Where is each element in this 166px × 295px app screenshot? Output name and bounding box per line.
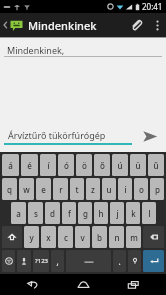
staticText: Mindenkinek <box>28 18 97 33</box>
staticText: k <box>131 208 136 219</box>
button[interactable]: Árvíztűrő tükörfúrógép <box>4 127 132 145</box>
button[interactable]: w <box>19 178 34 200</box>
button[interactable]: é <box>21 154 38 176</box>
button[interactable]: v <box>75 226 90 248</box>
staticText: g <box>83 208 88 219</box>
button[interactable]: y <box>24 226 39 248</box>
staticText: a <box>16 208 21 219</box>
button[interactable]: Back <box>16 274 50 295</box>
staticText: ?123 <box>35 257 48 265</box>
staticText: Árvíztűrő tükörfúrógép <box>8 129 106 141</box>
button[interactable]: í <box>40 154 56 176</box>
staticText: i <box>124 184 127 195</box>
button[interactable]: i <box>118 178 132 200</box>
staticText: o <box>139 184 144 195</box>
button[interactable]: k <box>126 202 140 224</box>
staticText: ú <box>117 160 123 171</box>
staticText: y <box>29 232 34 243</box>
staticText: q <box>7 184 12 195</box>
button[interactable]: n <box>109 226 124 248</box>
staticText: d <box>50 208 55 219</box>
button[interactable]: l <box>142 202 156 224</box>
button[interactable]: Send <box>136 124 164 148</box>
button[interactable]: h <box>94 202 108 224</box>
staticText: h <box>98 208 104 219</box>
button[interactable]: Enter <box>143 250 164 272</box>
staticText: j <box>116 208 119 219</box>
button[interactable]: More options <box>148 13 166 37</box>
button[interactable]: Home <box>66 274 100 295</box>
staticText: t <box>75 184 79 195</box>
button[interactable]: a <box>11 202 26 224</box>
staticText: n <box>114 232 120 243</box>
staticText: w <box>23 184 30 195</box>
button[interactable]: t <box>70 178 84 200</box>
button[interactable]: Shift <box>2 226 22 248</box>
button[interactable]: m <box>126 226 141 248</box>
staticText: í <box>47 160 50 171</box>
button[interactable]: ó <box>58 154 74 176</box>
staticText: , <box>56 256 59 267</box>
staticText: u <box>106 184 112 195</box>
button[interactable]: ú <box>112 154 128 176</box>
staticText: x <box>46 232 51 243</box>
button[interactable]: . <box>113 250 126 272</box>
button[interactable]: p <box>150 178 164 200</box>
button[interactable]: Recent apps <box>116 274 150 295</box>
button[interactable]: ?123 <box>33 250 49 272</box>
button[interactable]: f <box>62 202 76 224</box>
button[interactable]: Voice input <box>17 250 31 272</box>
staticText: ü <box>135 160 141 171</box>
button[interactable]: á <box>2 154 19 176</box>
staticText: b <box>97 232 102 243</box>
button[interactable]: ű <box>148 154 164 176</box>
button[interactable]: , <box>51 250 64 272</box>
button[interactable]: x <box>41 226 56 248</box>
staticText: ő <box>100 160 105 171</box>
button[interactable]: s <box>28 202 43 224</box>
button[interactable]: Back <box>2 13 8 37</box>
button[interactable]: ö <box>76 154 92 176</box>
button[interactable]: Attach <box>124 13 148 37</box>
button[interactable]: b <box>92 226 107 248</box>
button[interactable]: q <box>2 178 17 200</box>
button[interactable]: Settings <box>128 250 141 272</box>
staticText: 20:41 <box>142 1 163 12</box>
button[interactable]: r <box>53 178 68 200</box>
staticText: z <box>91 184 95 195</box>
staticText: f <box>68 208 71 219</box>
staticText: l <box>148 208 151 219</box>
staticText: e <box>41 184 46 195</box>
button[interactable]: u <box>102 178 116 200</box>
staticText: ó <box>64 160 69 171</box>
button[interactable]: c <box>58 226 73 248</box>
staticText: Mindenkinek, <box>7 44 65 56</box>
staticText: m <box>130 232 138 243</box>
button[interactable]: z <box>86 178 100 200</box>
staticText: á <box>8 160 13 171</box>
staticText: ű <box>153 160 159 171</box>
staticText: p <box>155 184 160 195</box>
button[interactable]: Space <box>66 250 111 272</box>
button[interactable]: d <box>45 202 60 224</box>
staticText: . <box>118 256 121 267</box>
staticText: c <box>64 232 68 243</box>
button[interactable]: g <box>78 202 92 224</box>
button[interactable]: Mindenkinek, <box>4 43 162 56</box>
staticText: s <box>34 208 38 219</box>
staticText: v <box>80 232 85 243</box>
staticText: r <box>59 184 63 195</box>
button[interactable]: Emoji <box>2 250 15 272</box>
button[interactable]: j <box>110 202 124 224</box>
staticText: é <box>27 160 32 171</box>
button[interactable]: o <box>134 178 148 200</box>
button[interactable]: ő <box>94 154 110 176</box>
button[interactable]: ü <box>130 154 146 176</box>
button[interactable]: e <box>36 178 51 200</box>
button[interactable]: Backspace <box>143 226 164 248</box>
staticText: ö <box>82 160 87 171</box>
